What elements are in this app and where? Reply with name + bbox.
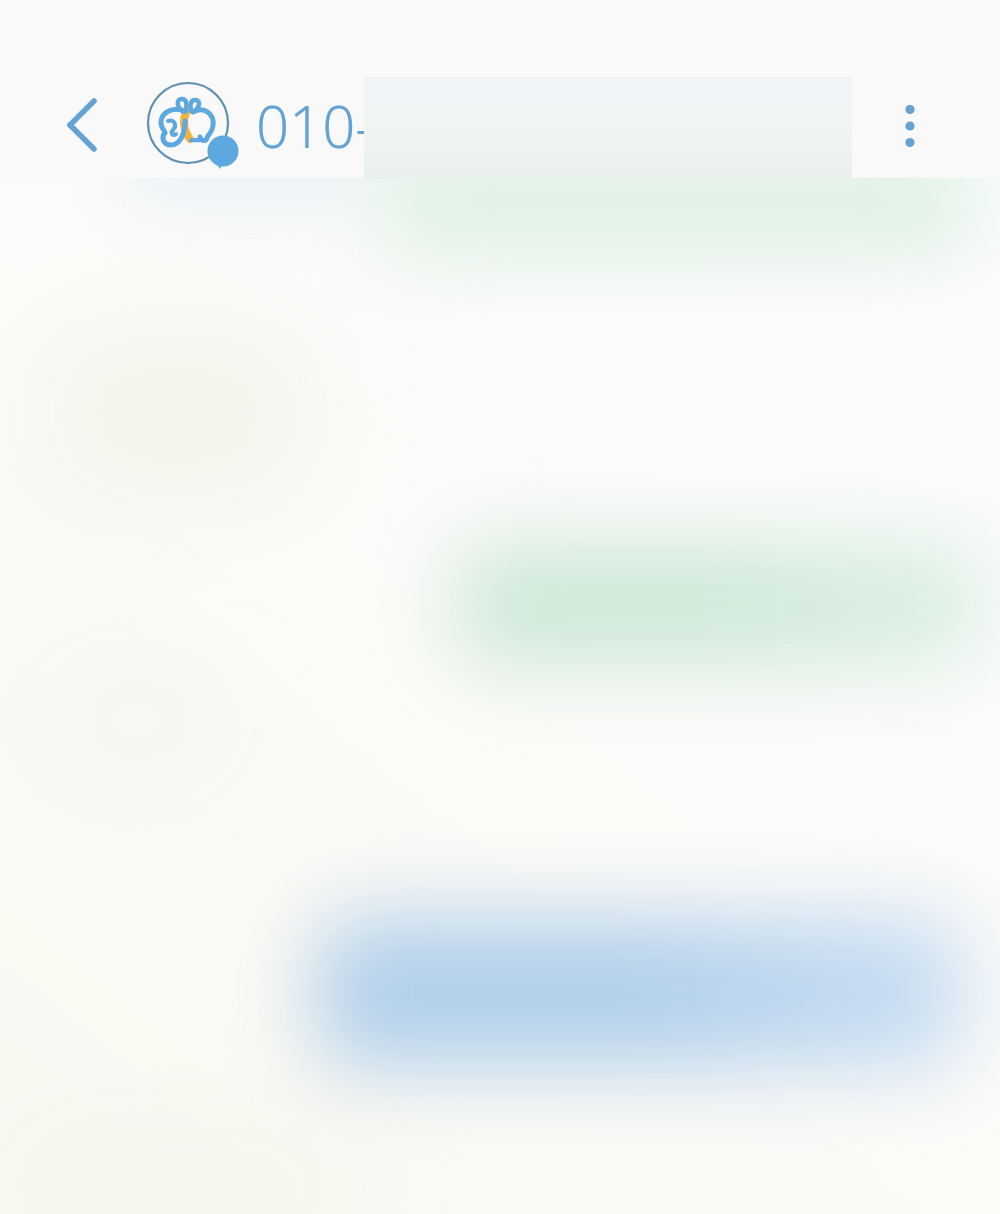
button[interactable]: Contact avatar [140, 72, 250, 178]
staticText: 010- [256, 86, 375, 165]
button[interactable]: Back [48, 91, 116, 159]
button[interactable]: More options [878, 94, 942, 158]
